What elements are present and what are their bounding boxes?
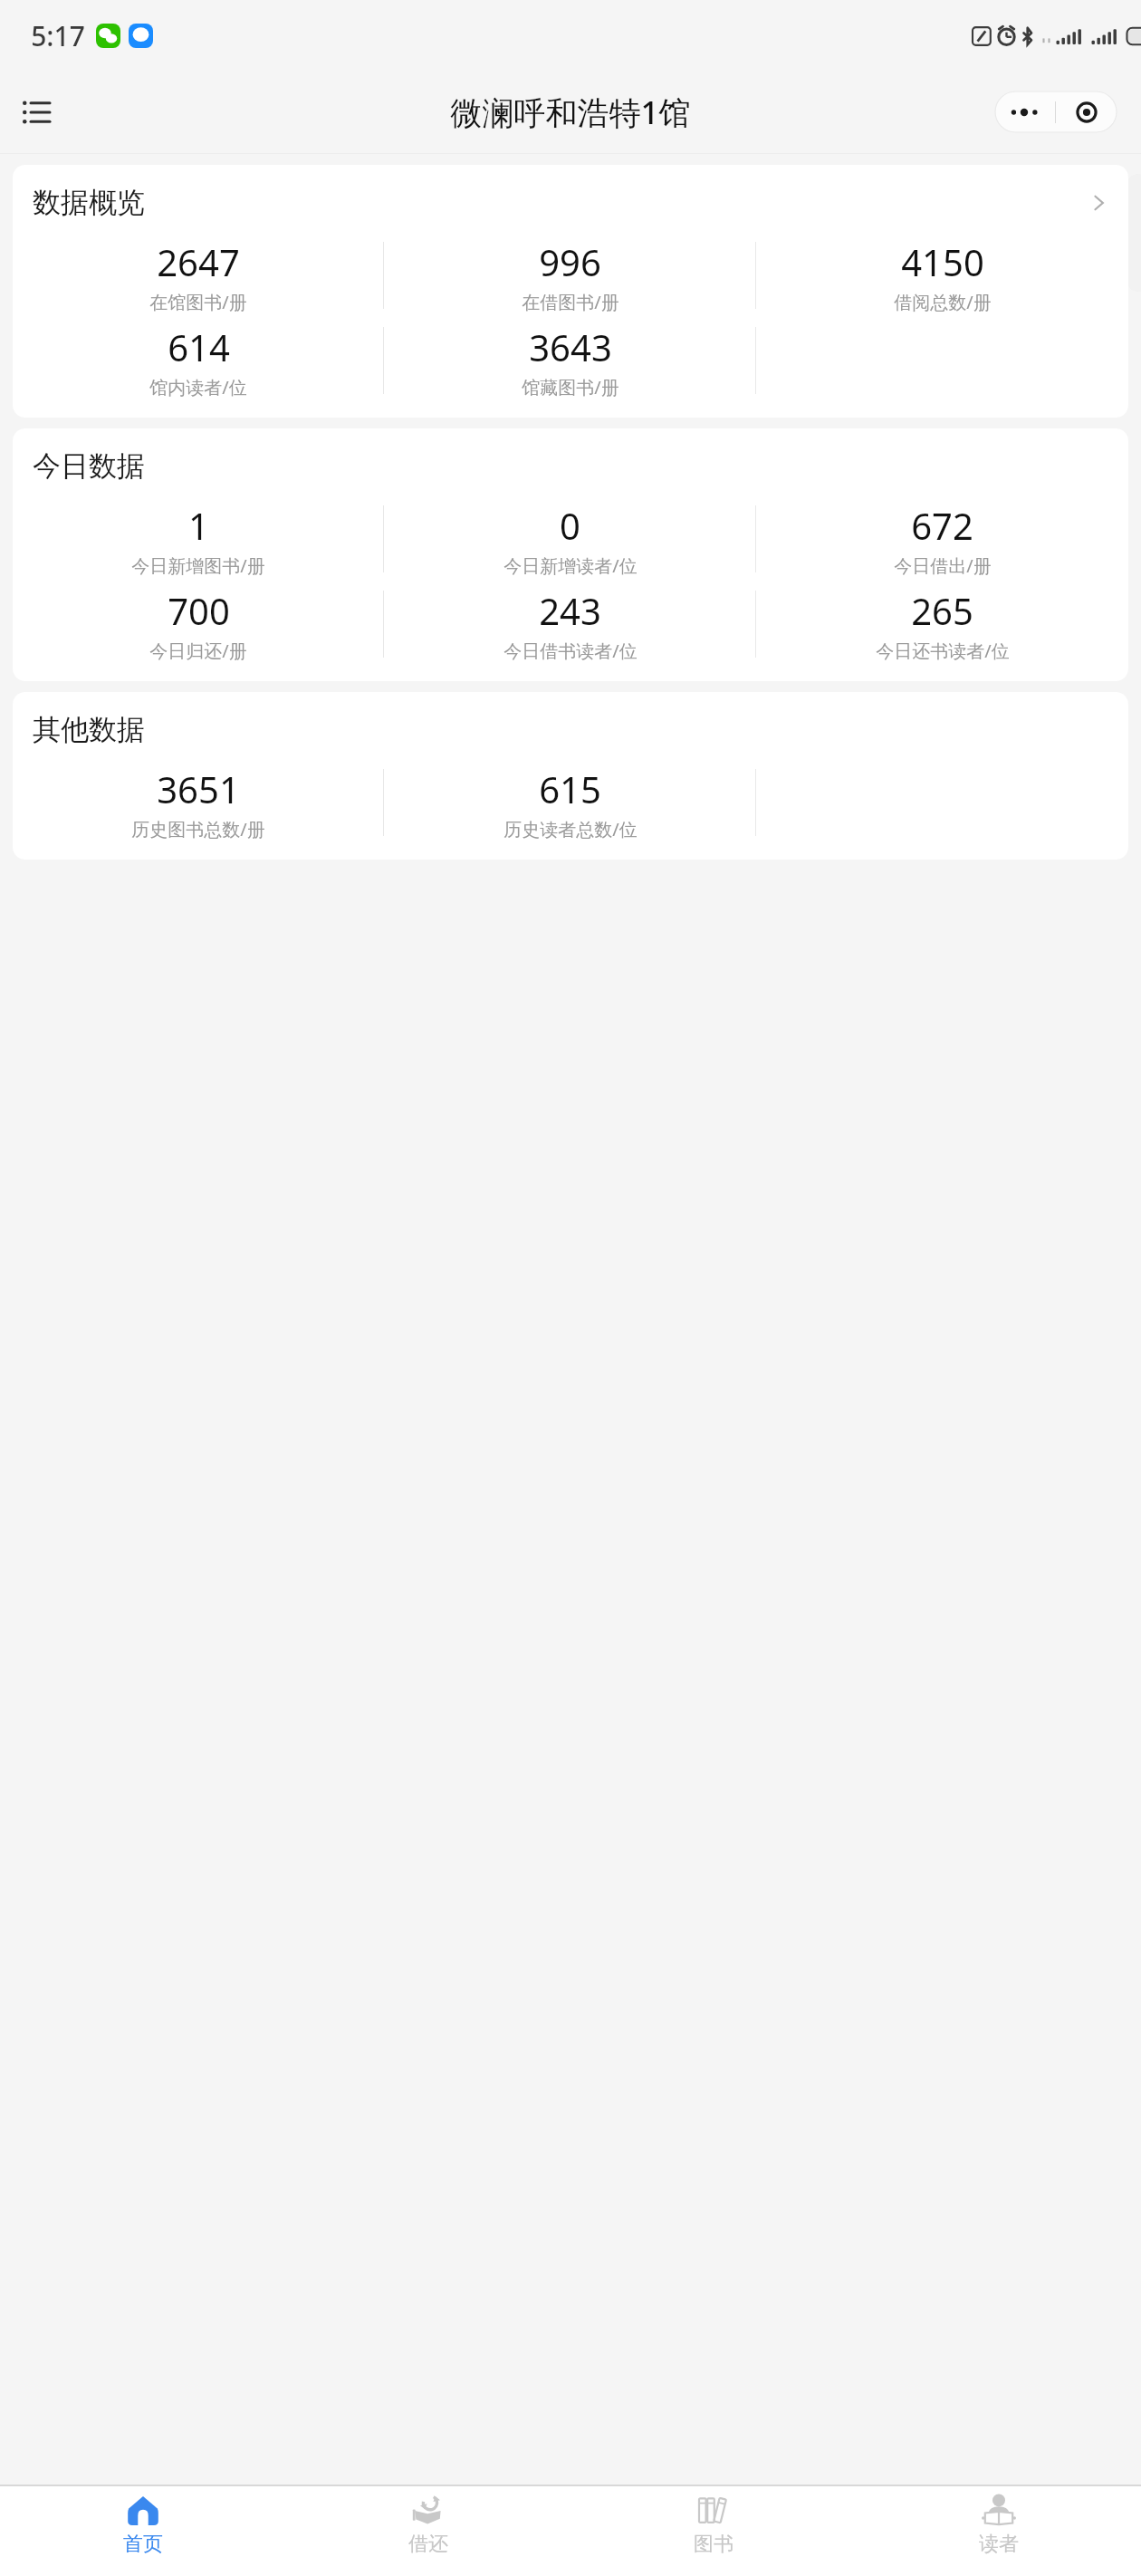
staticText: 5:17 (31, 17, 85, 54)
staticText: 今日还书读者/位 (876, 639, 1010, 663)
staticText: 馆内读者/位 (149, 375, 247, 399)
button[interactable]: Menu (13, 89, 60, 136)
staticText: 996 (539, 237, 601, 286)
staticText: 今日归还/册 (149, 639, 247, 663)
staticText: 今日新增读者/位 (503, 553, 638, 578)
staticText: 0 (560, 501, 580, 550)
staticText: 3643 (529, 322, 612, 371)
staticText: 3651 (157, 764, 240, 813)
staticText: 在借图书/册 (522, 290, 619, 314)
staticText: 4150 (901, 237, 984, 286)
staticText: 今日借出/册 (894, 553, 992, 578)
staticText: 借还 (408, 2532, 448, 2557)
button[interactable]: Close (1056, 91, 1117, 132)
button[interactable]: 读者 (856, 2486, 1141, 2563)
button[interactable]: 首页 (0, 2486, 285, 2563)
staticText: 借阅总数/册 (894, 290, 992, 314)
staticText: 1 (188, 501, 209, 550)
staticText: 历史图书总数/册 (131, 817, 265, 841)
button[interactable]: 图书 (570, 2486, 856, 2563)
staticText: 历史读者总数/位 (503, 817, 638, 841)
staticText: 672 (911, 501, 973, 550)
staticText: 614 (168, 322, 230, 371)
staticText: 615 (539, 764, 601, 813)
staticText: 今日借书读者/位 (503, 639, 638, 663)
staticText: 今日数据 (33, 448, 145, 484)
staticText: 243 (539, 586, 601, 635)
staticText: 首页 (123, 2532, 163, 2557)
staticText: 图书 (694, 2532, 733, 2557)
staticText: 700 (168, 586, 230, 635)
button[interactable]: 今日数据 (13, 428, 1128, 681)
staticText: 读者 (979, 2532, 1019, 2557)
button[interactable]: 数据概览 (13, 165, 1128, 418)
staticText: 馆藏图书/册 (522, 375, 619, 399)
staticText: 其他数据 (33, 712, 145, 747)
staticText: 微澜呼和浩特1馆 (450, 91, 691, 134)
button[interactable]: 其他数据 (13, 692, 1128, 860)
staticText: 数据概览 (33, 185, 145, 220)
button[interactable]: More (995, 91, 1055, 132)
staticText: 265 (911, 586, 973, 635)
button[interactable]: 借还 (285, 2486, 570, 2563)
staticText: 今日新增图书/册 (131, 553, 265, 578)
staticText: 2647 (157, 237, 240, 286)
staticText: 在馆图书/册 (149, 290, 247, 314)
